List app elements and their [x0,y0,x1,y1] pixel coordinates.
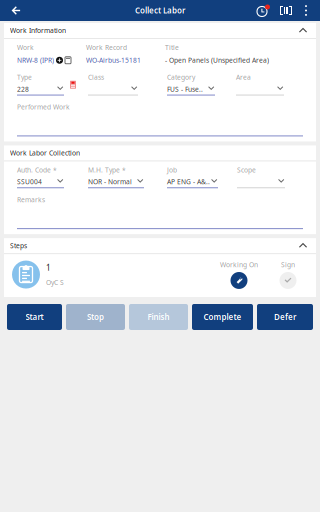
staticText: FUS - Fuse.. [167,85,203,93]
button[interactable]: Back [3,0,29,21]
staticText: Complete [203,312,241,322]
staticText: Scope [237,165,256,174]
staticText: WO-Airbus-15181 [86,56,141,65]
staticText: Work Record [86,43,127,52]
staticText: Title [165,43,179,52]
staticText: Steps [10,241,27,250]
staticText: 228 [17,85,29,93]
staticText: Area [236,73,251,82]
staticText: 1 [46,262,51,273]
button[interactable]: Start [7,304,62,330]
staticText: SSU004 [17,177,42,186]
staticText: Start [25,312,43,322]
staticText: Type [17,73,32,82]
staticText: Work Labor Collection [10,148,80,157]
staticText: Work Information [10,26,66,35]
button[interactable]: More options [301,5,311,16]
button[interactable]: Working On [220,260,258,289]
staticText: Job [167,165,177,174]
staticText: M.H. Type * [88,165,126,174]
button[interactable]: Scan barcode [280,6,292,15]
staticText: Sign [281,260,295,269]
staticText: Auth. Code * [17,165,57,174]
staticText: Defer [274,312,296,322]
staticText: Working On [220,260,258,269]
staticText: Category [167,73,195,82]
button[interactable]: Defer [257,304,313,330]
staticText: Class [88,73,104,82]
staticText: Finish [147,312,169,322]
staticText: Collect Labor [135,5,185,16]
button[interactable]: Stop [66,304,125,330]
button[interactable]: Timer [256,3,271,18]
staticText: AP ENG - A&.. [167,177,210,186]
staticText: - Open Panels (Unspecified Area) [165,56,269,65]
button[interactable]: Finish [129,304,188,330]
staticText: Remarks [17,195,45,204]
staticText: NRW-8 (IPR) [17,56,54,65]
staticText: Performed Work [17,103,70,111]
staticText: OyC S [46,278,64,287]
staticText: NOR - Normal [88,177,132,186]
button[interactable]: Sign [278,260,298,289]
staticText: Stop [87,312,104,322]
staticText: Work [17,43,34,52]
button[interactable]: Complete [192,304,253,330]
